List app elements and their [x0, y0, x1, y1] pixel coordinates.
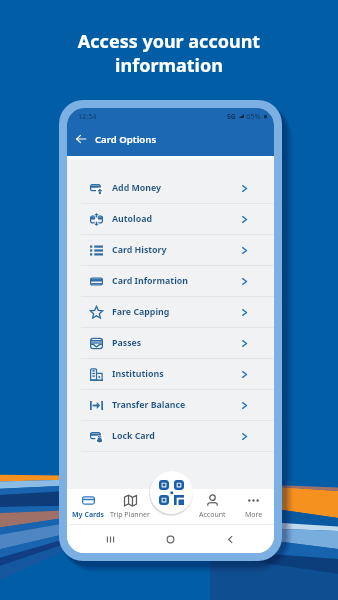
button[interactable]: Scan QR code [150, 471, 193, 514]
staticText: Institutions [112, 368, 164, 380]
staticText: Card History [112, 244, 167, 256]
button[interactable]: Passes [67, 328, 274, 359]
staticText: Passes [112, 337, 142, 349]
button[interactable]: Account [192, 494, 233, 520]
button[interactable]: Back [73, 131, 89, 147]
staticText: Card Information [112, 275, 189, 287]
button[interactable]: My Cards [67, 494, 109, 520]
staticText: Account [199, 510, 226, 520]
staticText: Card Options [95, 133, 157, 146]
button[interactable]: Transfer Balance [67, 390, 274, 421]
staticText: My Cards [72, 510, 105, 520]
button[interactable]: Card Information [67, 266, 274, 297]
staticText: 12:54 [78, 111, 97, 121]
staticText: Fare Capping [112, 306, 170, 318]
button[interactable]: Card History [67, 235, 274, 266]
staticText: Autoload [112, 213, 153, 225]
button[interactable]: Institutions [67, 359, 274, 390]
button[interactable]: Add Money [67, 173, 274, 204]
staticText: 65% [246, 111, 261, 121]
button[interactable]: Trip Planner [109, 494, 151, 520]
button[interactable]: Lock Card [67, 421, 274, 452]
staticText: Trip Planner [110, 510, 150, 520]
staticText: Add Money [112, 182, 162, 194]
staticText: 5G [227, 112, 236, 121]
staticText: Lock Card [112, 430, 155, 442]
button[interactable]: Fare Capping [67, 297, 274, 328]
button[interactable]: More [233, 494, 274, 520]
staticText: More [245, 510, 263, 520]
button[interactable]: Autoload [67, 204, 274, 235]
staticText: Access your account information [0, 29, 338, 77]
staticText: Transfer Balance [112, 399, 186, 411]
